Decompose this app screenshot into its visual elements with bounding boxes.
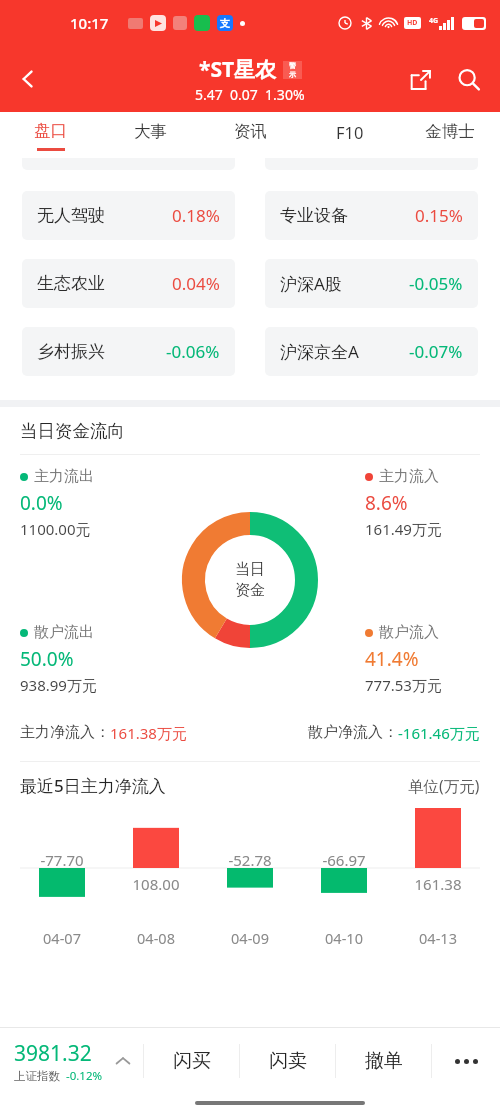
staticText: -0.07% xyxy=(409,340,463,363)
button[interactable]: 盘口 xyxy=(0,112,100,158)
staticText: 4G xyxy=(429,16,439,26)
button[interactable]: 闪卖 xyxy=(240,1028,335,1094)
staticText: 0.04% xyxy=(172,272,220,295)
staticText: -66.97 xyxy=(297,850,391,870)
staticText: 生态农业 xyxy=(37,273,105,294)
staticText: 撤单 xyxy=(365,1049,403,1073)
staticText: 04-10 xyxy=(297,928,391,948)
staticText: 散户净流入： xyxy=(308,723,398,742)
staticText: 资讯 xyxy=(234,121,267,142)
staticText: 10:17 xyxy=(70,13,109,33)
button[interactable]: 撤单 xyxy=(336,1028,431,1094)
staticText: 金博士 xyxy=(425,121,475,142)
button[interactable]: 乡村振兴 xyxy=(22,327,235,376)
staticText: 闪卖 xyxy=(269,1049,307,1073)
staticText: 04-13 xyxy=(391,928,485,948)
staticText: 散户流出 xyxy=(34,623,94,642)
button[interactable]: 金博士 xyxy=(400,112,500,158)
staticText: 161.38 xyxy=(391,874,485,894)
staticText: F10 xyxy=(336,121,364,143)
staticText: HD xyxy=(407,18,418,28)
staticText: 161.49万元 xyxy=(365,519,442,539)
staticText: 04-07 xyxy=(15,928,109,948)
staticText: 04-08 xyxy=(109,928,203,948)
button[interactable]: 专业设备 xyxy=(265,191,478,240)
staticText: 主力净流入： xyxy=(20,723,110,742)
button[interactable]: Back xyxy=(0,51,56,107)
staticText: 最近5日主力净流入 xyxy=(20,774,166,797)
staticText: 沪深A股 xyxy=(280,272,342,295)
button[interactable]: 生态农业 xyxy=(22,259,235,308)
button[interactable]: Search xyxy=(444,55,492,103)
button[interactable]: 大事 xyxy=(100,112,200,158)
staticText: 0.15% xyxy=(415,204,463,227)
staticText: 3981.32 xyxy=(14,1039,92,1068)
staticText: 当日资金流向 xyxy=(20,420,125,442)
button[interactable]: 无人驾驶 xyxy=(22,191,235,240)
staticText: 散户流入 xyxy=(379,623,439,642)
staticText: 乡村振兴 xyxy=(37,341,105,362)
button[interactable]: F10 xyxy=(300,112,400,158)
button[interactable]: Expand xyxy=(103,1041,143,1081)
button[interactable]: 沪深A股 xyxy=(265,259,478,308)
staticText: 41.4% xyxy=(365,646,419,672)
staticText: 无人驾驶 xyxy=(37,205,105,226)
staticText: 8.6% xyxy=(365,490,408,516)
staticText: -0.05% xyxy=(409,272,463,295)
staticText: 大事 xyxy=(134,121,167,142)
staticText: 警 xyxy=(289,61,296,70)
staticText: -77.70 xyxy=(15,850,109,870)
staticText: -52.78 xyxy=(203,850,297,870)
staticText: 777.53万元 xyxy=(365,675,442,695)
staticText: 闪买 xyxy=(173,1049,211,1073)
staticText: -0.06% xyxy=(166,340,220,363)
staticText: 0.18% xyxy=(172,204,220,227)
button[interactable]: 闪买 xyxy=(144,1028,239,1094)
staticText: 示 xyxy=(289,70,296,79)
staticText: *ST星农 xyxy=(199,55,277,84)
staticText: -0.12% xyxy=(66,1068,103,1084)
staticText: 单位(万元) xyxy=(408,775,480,796)
staticText: 主力流出 xyxy=(34,467,94,486)
staticText: 主力流入 xyxy=(379,467,439,486)
staticText: 盘口 xyxy=(34,120,67,141)
staticText: 0.0% xyxy=(20,490,63,516)
staticText: 938.99万元 xyxy=(20,675,97,695)
staticText: 沪深京全A xyxy=(280,340,359,363)
staticText: 上证指数 xyxy=(14,1069,60,1083)
button[interactable]: More xyxy=(432,1028,500,1094)
button[interactable]: 资讯 xyxy=(200,112,300,158)
button[interactable]: Share xyxy=(396,55,444,103)
staticText: 161.38万元 xyxy=(110,723,187,743)
staticText: 108.00 xyxy=(109,874,203,894)
staticText: 当日 xyxy=(235,560,265,579)
staticText: -161.46万元 xyxy=(398,723,480,743)
staticText: 1100.00元 xyxy=(20,519,91,539)
staticText: 50.0% xyxy=(20,646,74,672)
staticText: 5.47 0.07 1.30% xyxy=(195,85,305,104)
staticText: 支 xyxy=(220,17,230,30)
staticText: 资金 xyxy=(235,581,265,600)
staticText: 专业设备 xyxy=(280,205,348,226)
staticText: 04-09 xyxy=(203,928,297,948)
button[interactable]: 沪深京全A xyxy=(265,327,478,376)
